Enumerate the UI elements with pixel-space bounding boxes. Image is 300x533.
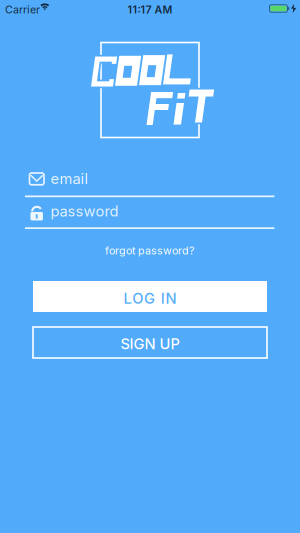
staticText: password	[50, 202, 118, 220]
button[interactable]: SIGN UP	[33, 327, 267, 358]
staticText: Carrier	[5, 3, 40, 16]
button[interactable]: password	[25, 198, 275, 231]
staticText: 11:17 AM	[127, 3, 172, 16]
staticText: email	[50, 170, 88, 187]
staticText: SIGN UP	[120, 335, 179, 353]
staticText: LOG IN	[123, 290, 176, 307]
button[interactable]: email	[25, 165, 275, 198]
button[interactable]: forgot password?	[105, 244, 194, 257]
button[interactable]: LOG IN	[33, 281, 267, 312]
staticText: forgot password?	[105, 244, 194, 257]
